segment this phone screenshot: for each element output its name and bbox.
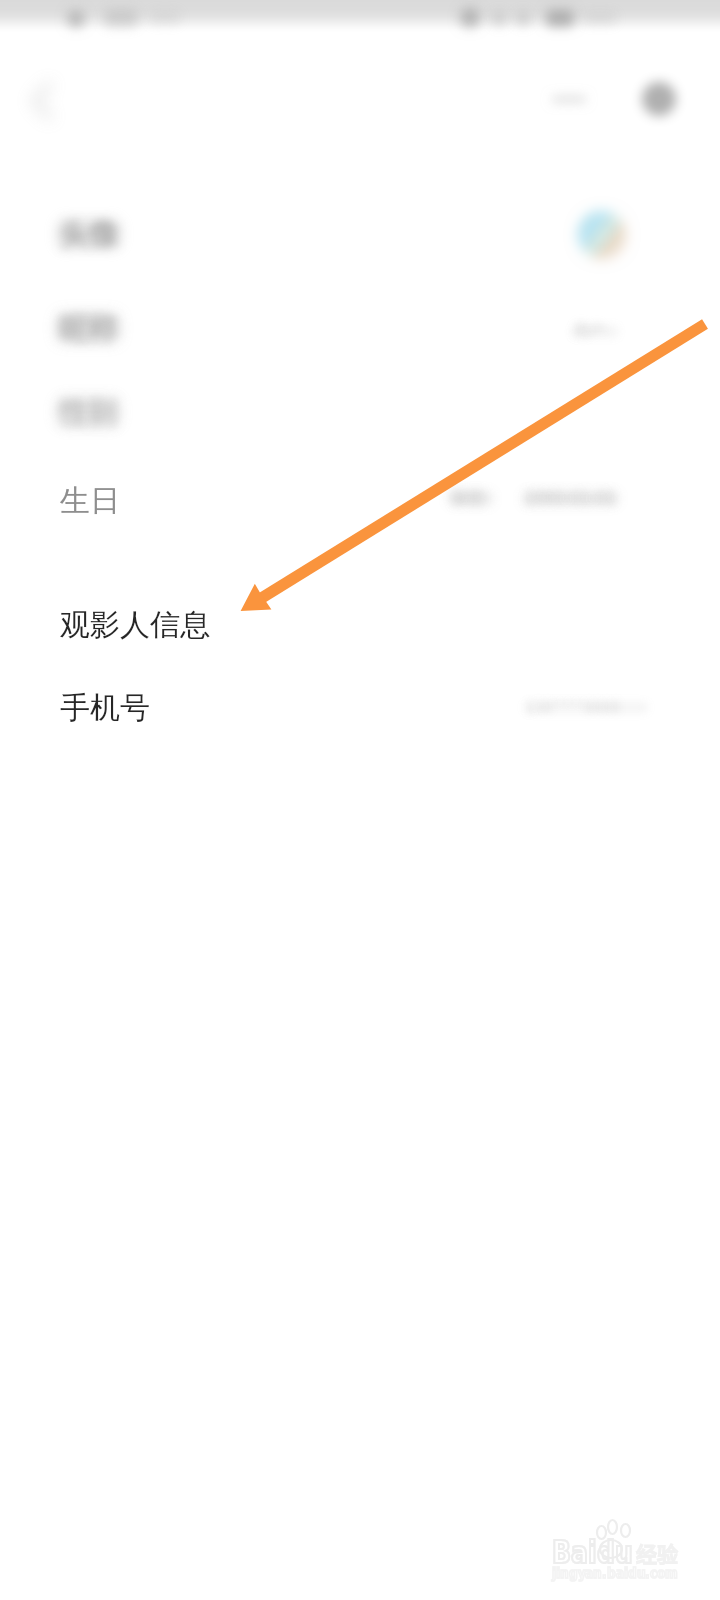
- button[interactable]: Nickname: [0, 288, 720, 372]
- button[interactable]: More options: [628, 68, 690, 130]
- button[interactable]: 手机号: [0, 668, 720, 748]
- button[interactable]: 生日: [0, 459, 720, 543]
- button[interactable]: Avatar: [0, 194, 720, 280]
- staticText: 观影人信息: [60, 606, 210, 644]
- staticText: 生日: [60, 482, 120, 520]
- button[interactable]: 观影人信息: [0, 585, 720, 665]
- staticText: 手机号: [60, 689, 150, 727]
- button[interactable]: Gender: [0, 372, 720, 456]
- button[interactable]: Minimize: [538, 68, 600, 130]
